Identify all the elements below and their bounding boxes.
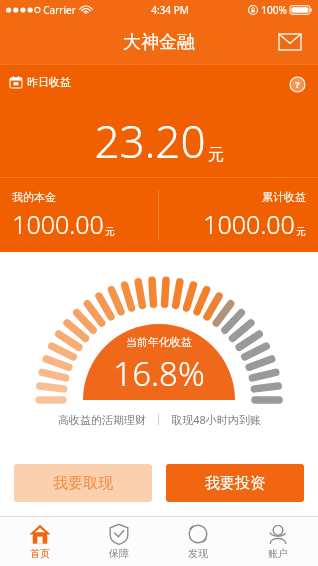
button[interactable]: 我要取现: [14, 464, 152, 502]
staticText: 累计收益: [262, 190, 306, 204]
staticText: 取现48小时内到账: [171, 412, 261, 427]
staticText: 我要取现: [53, 474, 113, 493]
staticText: 我要投资: [205, 474, 265, 493]
staticText: 1000.00: [203, 207, 295, 241]
button[interactable]: 保障: [79, 517, 158, 566]
staticText: 我的本金: [12, 190, 56, 204]
staticText: Carrier: [43, 3, 76, 17]
staticText: 16.8%: [113, 351, 205, 396]
staticText: 高收益的活期理财: [58, 413, 146, 427]
staticText: ?: [295, 78, 300, 90]
button[interactable]: 首页: [0, 517, 79, 566]
staticText: 元: [105, 225, 115, 238]
staticText: 23.20: [94, 111, 206, 171]
button[interactable]: Messages: [272, 24, 308, 60]
staticText: 昨日收益: [27, 75, 71, 89]
staticText: 账户: [268, 547, 288, 560]
button[interactable]: 账户: [238, 517, 318, 566]
staticText: 当前年化收益: [126, 335, 192, 349]
staticText: 1000.00: [12, 207, 104, 241]
staticText: 元: [296, 225, 306, 238]
staticText: 保障: [109, 547, 129, 560]
staticText: 100%: [261, 3, 287, 17]
staticText: 元: [208, 145, 224, 165]
staticText: 首页: [30, 547, 50, 560]
staticText: 大神金融: [123, 31, 195, 54]
button[interactable]: 我要投资: [166, 464, 304, 502]
button[interactable]: Help: [284, 71, 310, 97]
staticText: 发现: [188, 547, 208, 560]
button[interactable]: 发现: [158, 517, 238, 566]
staticText: 4:34 PM: [151, 3, 189, 17]
